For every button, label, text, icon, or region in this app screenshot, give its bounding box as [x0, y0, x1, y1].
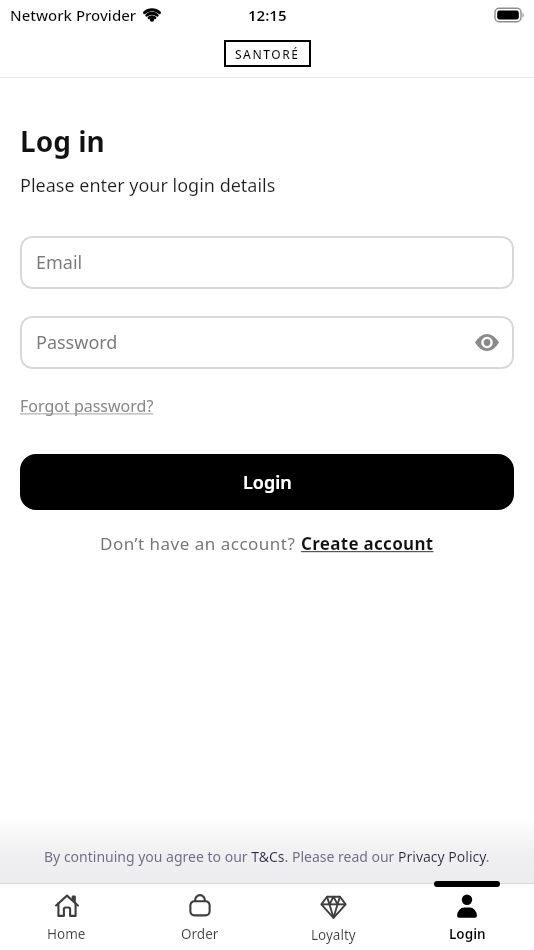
staticText: Login — [243, 470, 292, 495]
button[interactable]: Login — [400, 884, 534, 950]
staticText: Create account — [301, 532, 434, 555]
staticText: Home — [47, 925, 86, 943]
staticText: Log in — [20, 122, 105, 160]
button[interactable]: Loyalty — [266, 884, 400, 950]
button[interactable]: Forgot password? — [20, 395, 154, 417]
button[interactable]: Login — [20, 454, 514, 510]
staticText: Email — [36, 250, 83, 275]
button[interactable]: Password — [20, 316, 514, 369]
button[interactable]: Order — [133, 884, 266, 950]
staticText: SANTORÉ — [235, 46, 300, 62]
staticText: 12:15 — [248, 5, 287, 25]
button[interactable]: Email — [20, 236, 514, 289]
staticText: Please enter your login details — [20, 173, 276, 198]
staticText: Password — [36, 330, 118, 355]
staticText: By continuing you agree to our T&Cs. Ple… — [44, 847, 490, 866]
staticText: Loyalty — [311, 926, 356, 944]
button[interactable]: Home — [0, 884, 133, 950]
staticText: Network Provider — [10, 5, 137, 25]
button[interactable]: Don’t have an account? — [20, 532, 514, 555]
staticText: Order — [181, 925, 219, 943]
staticText: Login — [449, 925, 486, 943]
staticText: Don’t have an account? — [100, 532, 301, 555]
